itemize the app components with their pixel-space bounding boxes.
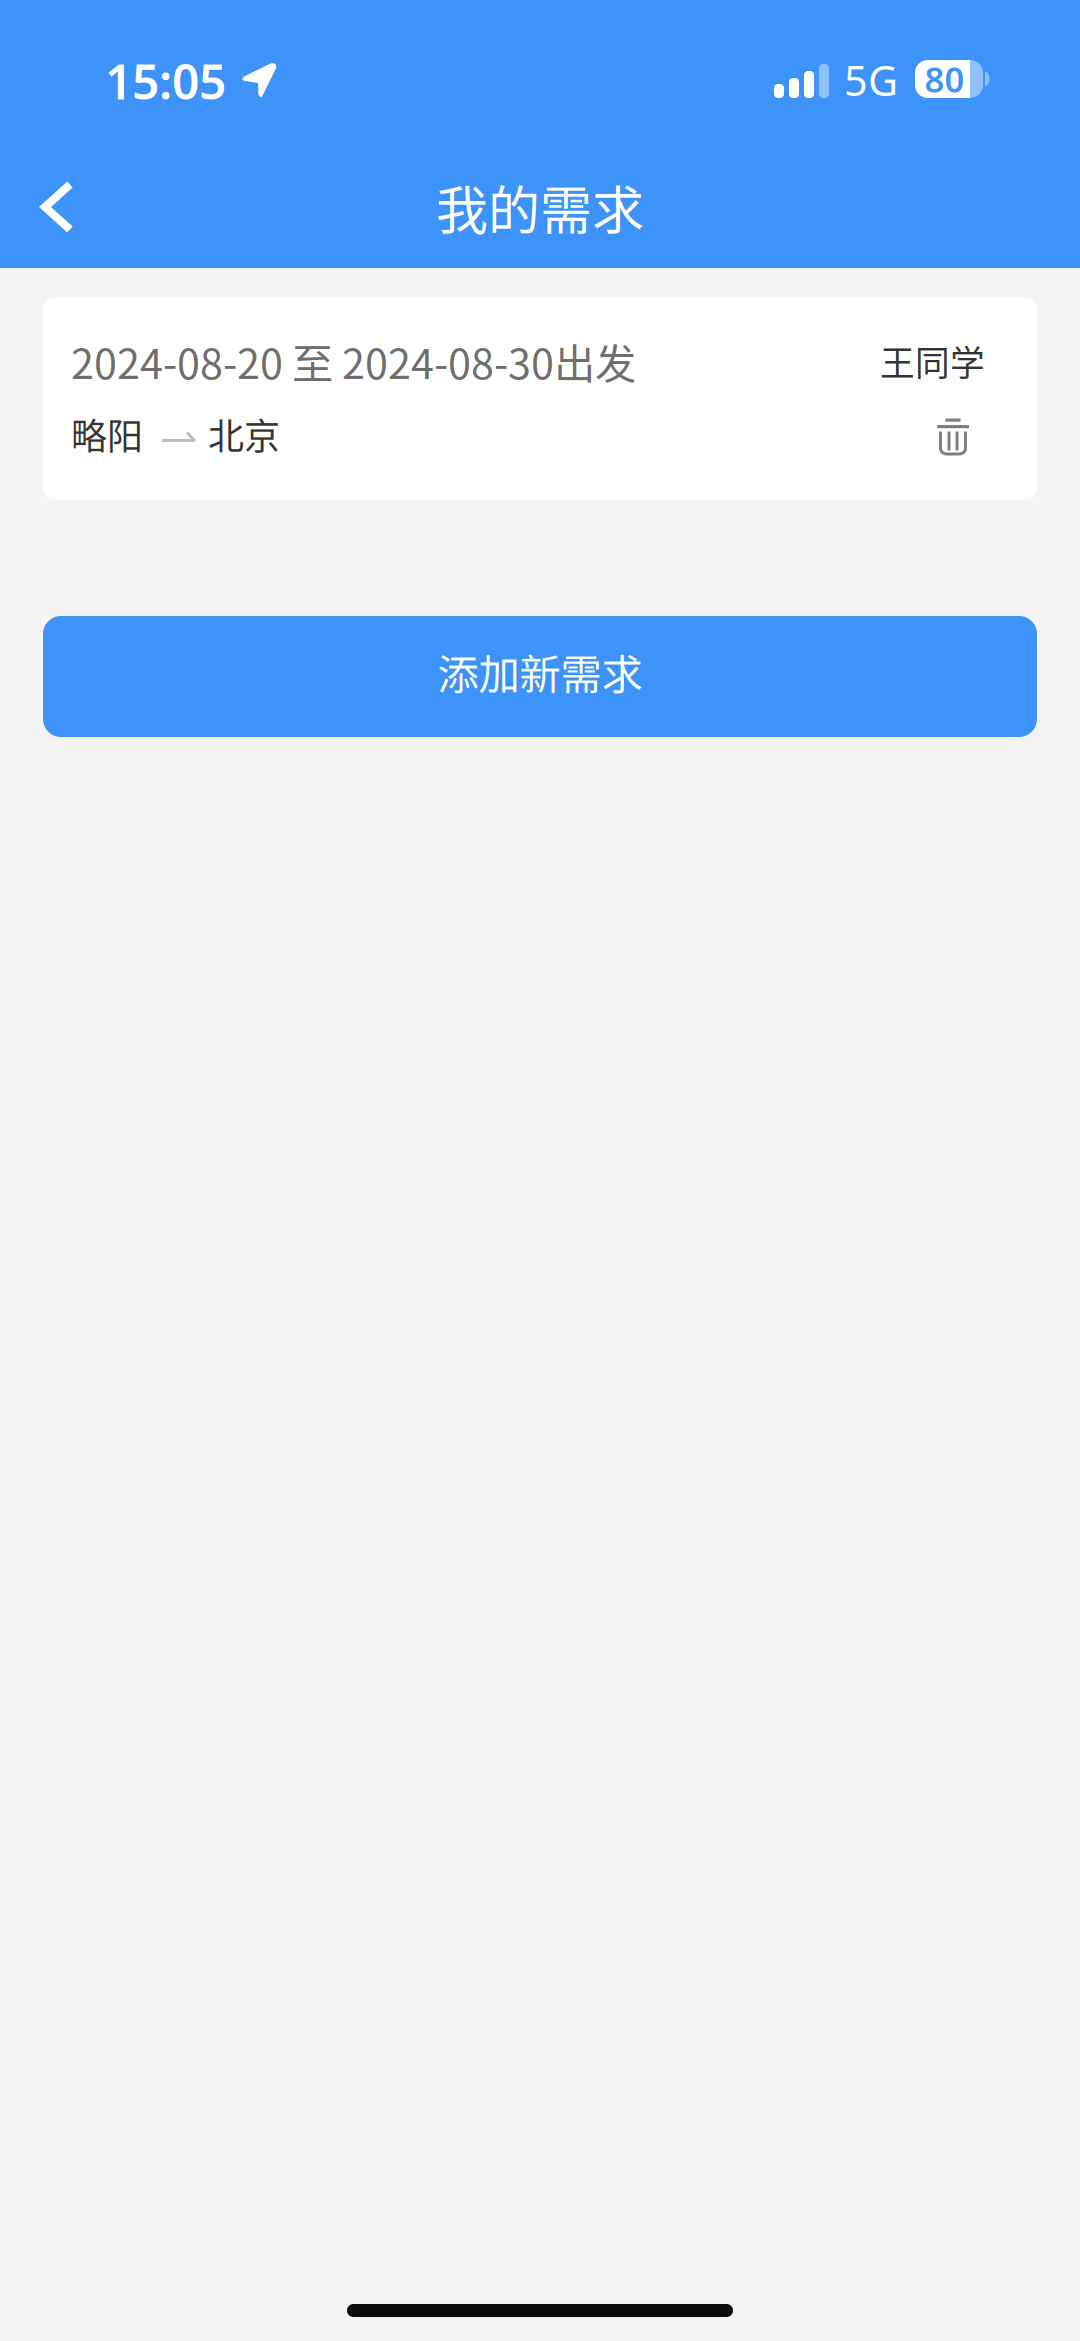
staticText: 5G <box>844 53 898 107</box>
staticText: 王同学 <box>880 336 985 386</box>
button[interactable]: 2024-08-20 至 2024-08-30出发 <box>43 297 1037 500</box>
button[interactable]: Back <box>0 162 109 264</box>
staticText: 北京 <box>208 408 280 460</box>
button[interactable]: 添加新需求 <box>43 616 1037 737</box>
staticText: 80 <box>924 56 964 102</box>
staticText: 我的需求 <box>436 169 644 245</box>
staticText: 15:05 <box>105 49 226 113</box>
button[interactable]: Delete <box>937 415 985 452</box>
staticText: 略阳 <box>71 408 143 460</box>
staticText: 2024-08-20 至 2024-08-30出发 <box>71 331 636 391</box>
staticText: 添加新需求 <box>437 642 642 701</box>
